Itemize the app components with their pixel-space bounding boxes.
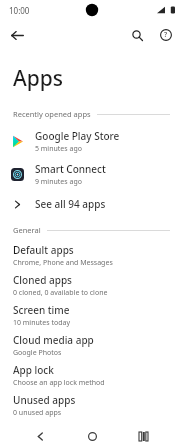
staticText: Smart Connect — [35, 162, 106, 176]
button[interactable]: Default apps — [0, 240, 183, 270]
staticText: Cloud media app — [13, 333, 94, 347]
staticText: See all 94 apps — [35, 197, 106, 211]
staticText: Google Photos — [13, 348, 62, 358]
staticText: 10 minutes today — [13, 318, 71, 328]
button[interactable]: Cloned apps — [0, 270, 183, 300]
staticText: Chrome, Phone and Messages — [13, 258, 113, 268]
staticText: 0 cloned, 0 available to clone — [13, 288, 108, 298]
button[interactable]: See all 94 apps — [0, 191, 183, 217]
button[interactable]: Screen time — [0, 300, 183, 330]
button[interactable]: Help — [153, 22, 179, 48]
button[interactable]: Google Play Store — [0, 125, 183, 158]
staticText: 5 minutes ago — [35, 144, 82, 154]
staticText: Screen time — [13, 303, 70, 317]
staticText: ? — [164, 30, 168, 40]
staticText: General — [13, 225, 41, 235]
staticText: Apps — [13, 64, 64, 93]
button[interactable]: Cloud media app — [0, 330, 183, 360]
button[interactable]: Back — [4, 22, 30, 48]
button[interactable]: Home — [80, 425, 104, 447]
staticText: 10:00 — [9, 5, 30, 16]
button[interactable]: Unused apps — [0, 390, 183, 420]
button[interactable]: Search — [124, 22, 150, 48]
staticText: App lock — [13, 363, 54, 377]
staticText: Unused apps — [13, 393, 76, 407]
staticText: Cloned apps — [13, 273, 72, 287]
staticText: 0 unused apps — [13, 408, 62, 418]
staticText: Google Play Store — [35, 129, 120, 143]
staticText: Recently opened apps — [13, 109, 91, 119]
button[interactable]: Recent apps — [131, 425, 155, 447]
button[interactable]: Smart Connect — [0, 158, 183, 191]
staticText: 9 minutes ago — [35, 177, 82, 187]
button[interactable]: App lock — [0, 360, 183, 390]
staticText: Choose an app lock method — [13, 378, 105, 388]
button[interactable]: Back — [28, 425, 52, 447]
staticText: Default apps — [13, 243, 74, 257]
